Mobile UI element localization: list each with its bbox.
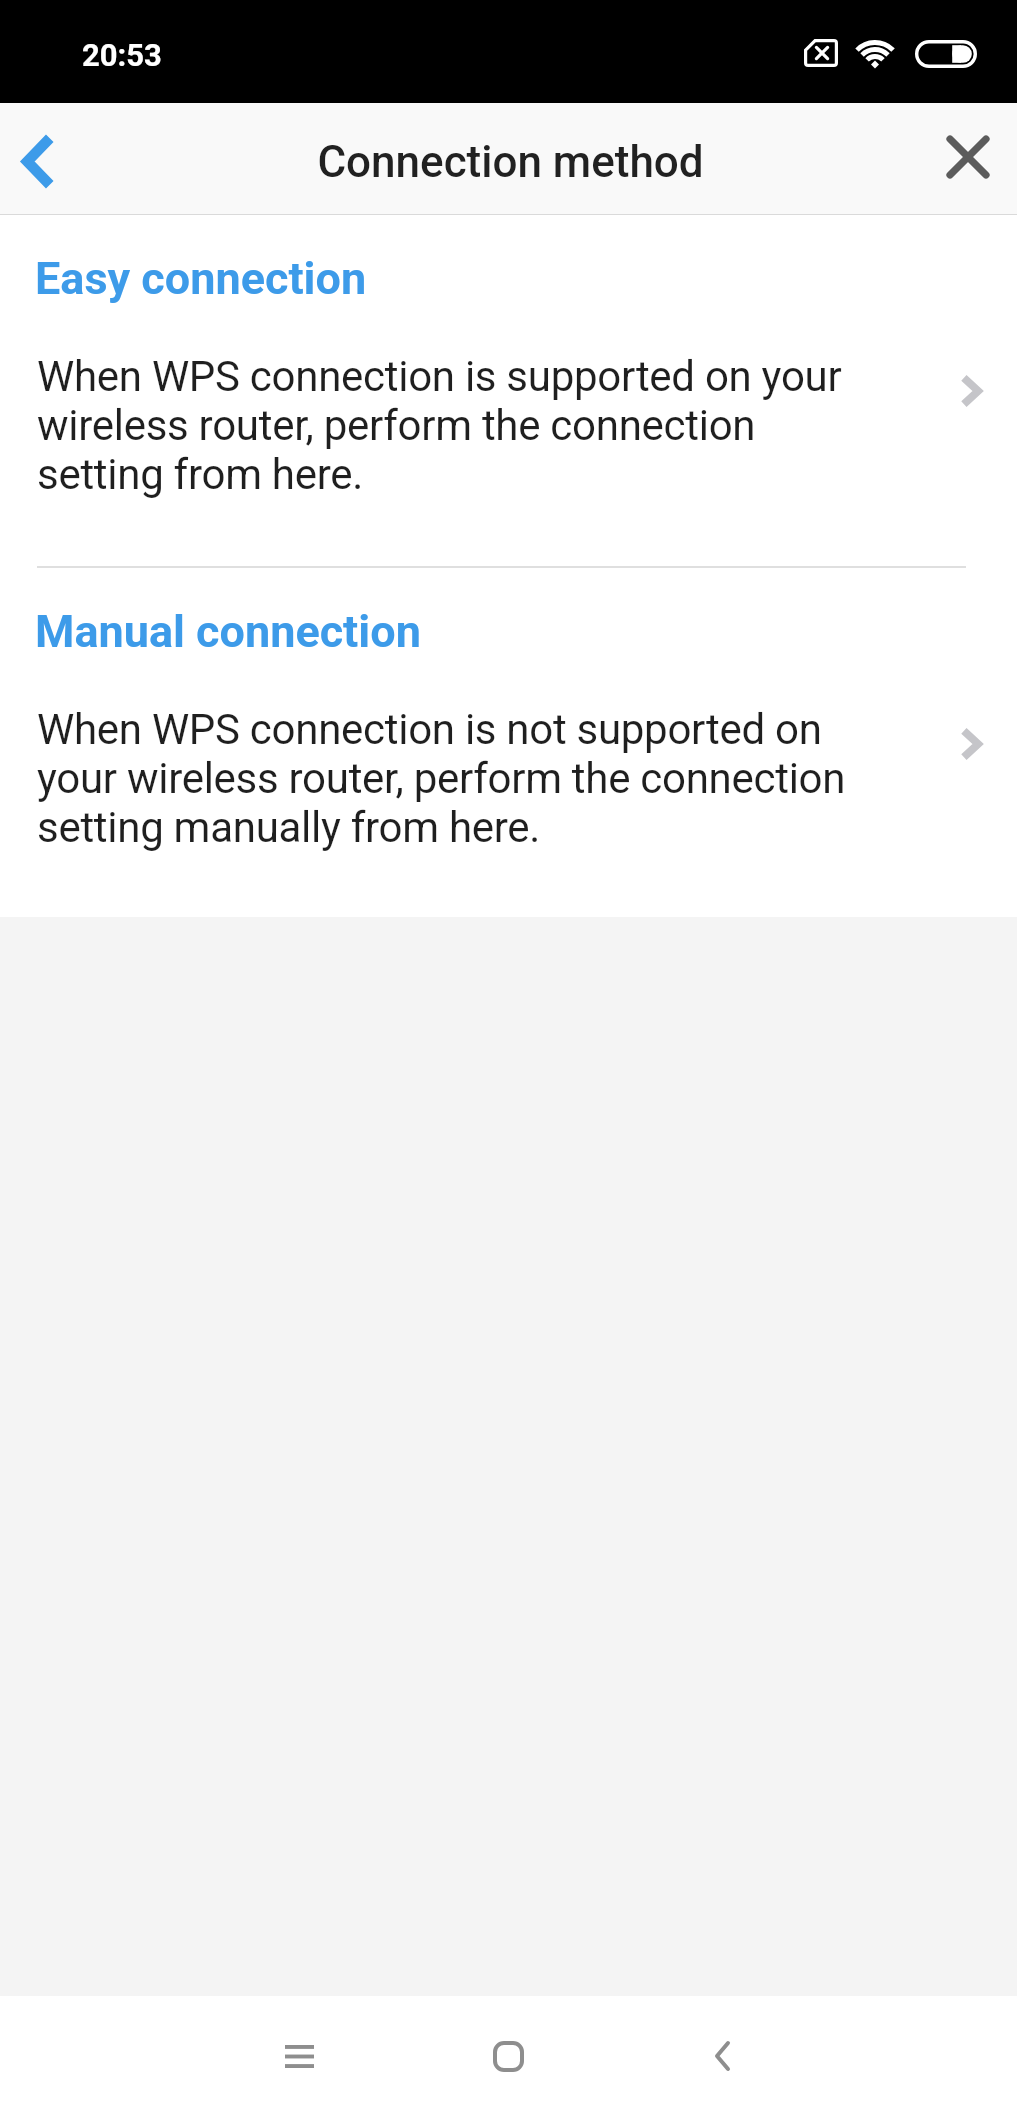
button[interactable]: Home [458,2006,558,2106]
button[interactable]: Easy connection [0,215,1017,566]
button[interactable]: Close [912,103,1017,214]
staticText: 20:53 [82,37,162,73]
button[interactable]: Navigate up [0,103,90,214]
button[interactable]: Back [672,2006,772,2106]
button[interactable]: Manual connection [0,568,1017,916]
staticText: When WPS connection is not supported on … [37,705,880,852]
staticText: Easy connection [35,252,367,305]
staticText: When WPS connection is supported on your… [37,352,880,499]
button[interactable]: Recent apps [249,2006,349,2106]
staticText: Manual connection [35,605,421,658]
staticText: Connection method [317,136,704,188]
